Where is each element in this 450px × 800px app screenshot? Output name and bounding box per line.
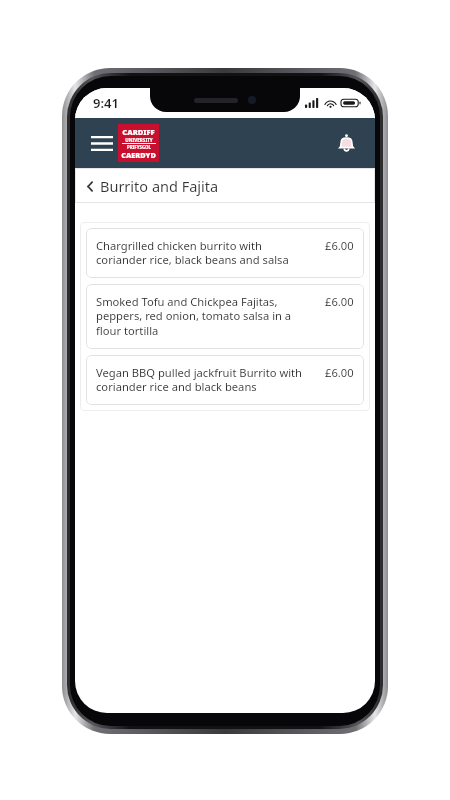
button[interactable]: Cardiff University home bbox=[118, 124, 159, 162]
staticText: 9:41 bbox=[93, 94, 119, 112]
button[interactable]: Burrito and Fajita bbox=[75, 168, 375, 203]
staticText: PRIFYSGOL bbox=[127, 144, 151, 150]
staticText: Vegan BBQ pulled jackfruit Burrito with … bbox=[96, 365, 319, 395]
button[interactable]: Notifications bbox=[329, 126, 363, 160]
staticText: CARDIFF bbox=[122, 127, 155, 137]
staticText: Chargrilled chicken burrito with coriand… bbox=[96, 238, 319, 268]
button[interactable]: Vegan BBQ pulled jackfruit Burrito with … bbox=[86, 355, 364, 405]
staticText: CAERDYDD bbox=[120, 150, 157, 159]
button[interactable]: Chargrilled chicken burrito with coriand… bbox=[86, 228, 364, 278]
button[interactable]: Smoked Tofu and Chickpea Fajitas, pepper… bbox=[86, 284, 364, 349]
staticText: £6.00 bbox=[325, 294, 354, 309]
staticText: Burrito and Fajita bbox=[100, 176, 219, 196]
staticText: UNIVERSITY bbox=[125, 137, 153, 143]
staticText: £6.00 bbox=[325, 365, 354, 380]
staticText: £6.00 bbox=[325, 238, 354, 253]
button[interactable]: Open navigation menu bbox=[83, 124, 121, 162]
staticText: Smoked Tofu and Chickpea Fajitas, pepper… bbox=[96, 294, 319, 339]
